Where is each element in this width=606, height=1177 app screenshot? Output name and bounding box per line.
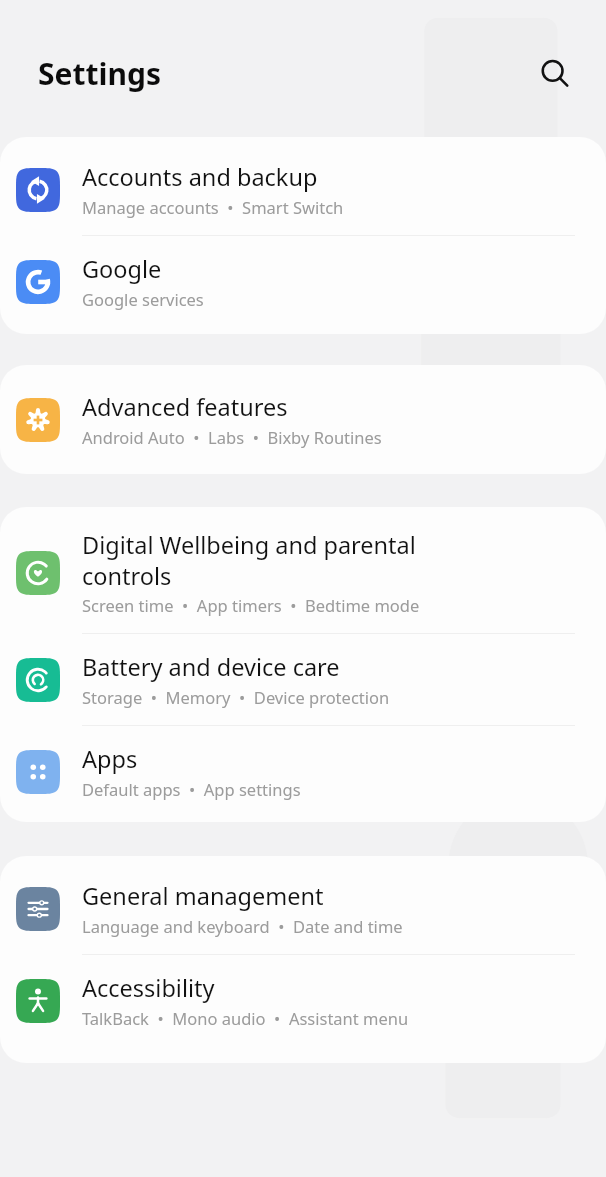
staticText: General management [82,880,324,912]
button[interactable]: Apps [0,726,606,822]
button[interactable]: Battery and device care [0,634,606,725]
staticText: Advanced features [82,391,288,423]
staticText: Google services [82,288,204,310]
staticText: Accessibility [82,972,215,1004]
staticText: Apps [82,743,138,775]
button[interactable]: Search [531,50,579,98]
staticText: Google [82,253,162,285]
staticText: Default apps • App settings [82,778,301,800]
staticText: Storage • Memory • Device protection [82,686,390,708]
staticText: Screen time • App timers • Bedtime mode [82,594,420,616]
button[interactable]: Advanced features [0,365,606,474]
staticText: Android Auto • Labs • Bixby Routines [82,426,382,448]
staticText: Manage accounts • Smart Switch [82,196,344,218]
button[interactable]: Digital Wellbeing and parental controls [0,507,606,633]
staticText: Accounts and backup [82,161,318,193]
button[interactable]: Google [0,236,606,334]
staticText: Battery and device care [82,651,340,683]
staticText: TalkBack • Mono audio • Assistant menu [82,1007,409,1029]
button[interactable]: Accessibility [0,955,606,1063]
staticText: Digital Wellbeing and parental controls [82,529,416,591]
button[interactable]: Accounts and backup [0,137,606,235]
button[interactable]: General management [0,856,606,954]
staticText: Settings [38,53,161,94]
staticText: Language and keyboard • Date and time [82,915,403,937]
